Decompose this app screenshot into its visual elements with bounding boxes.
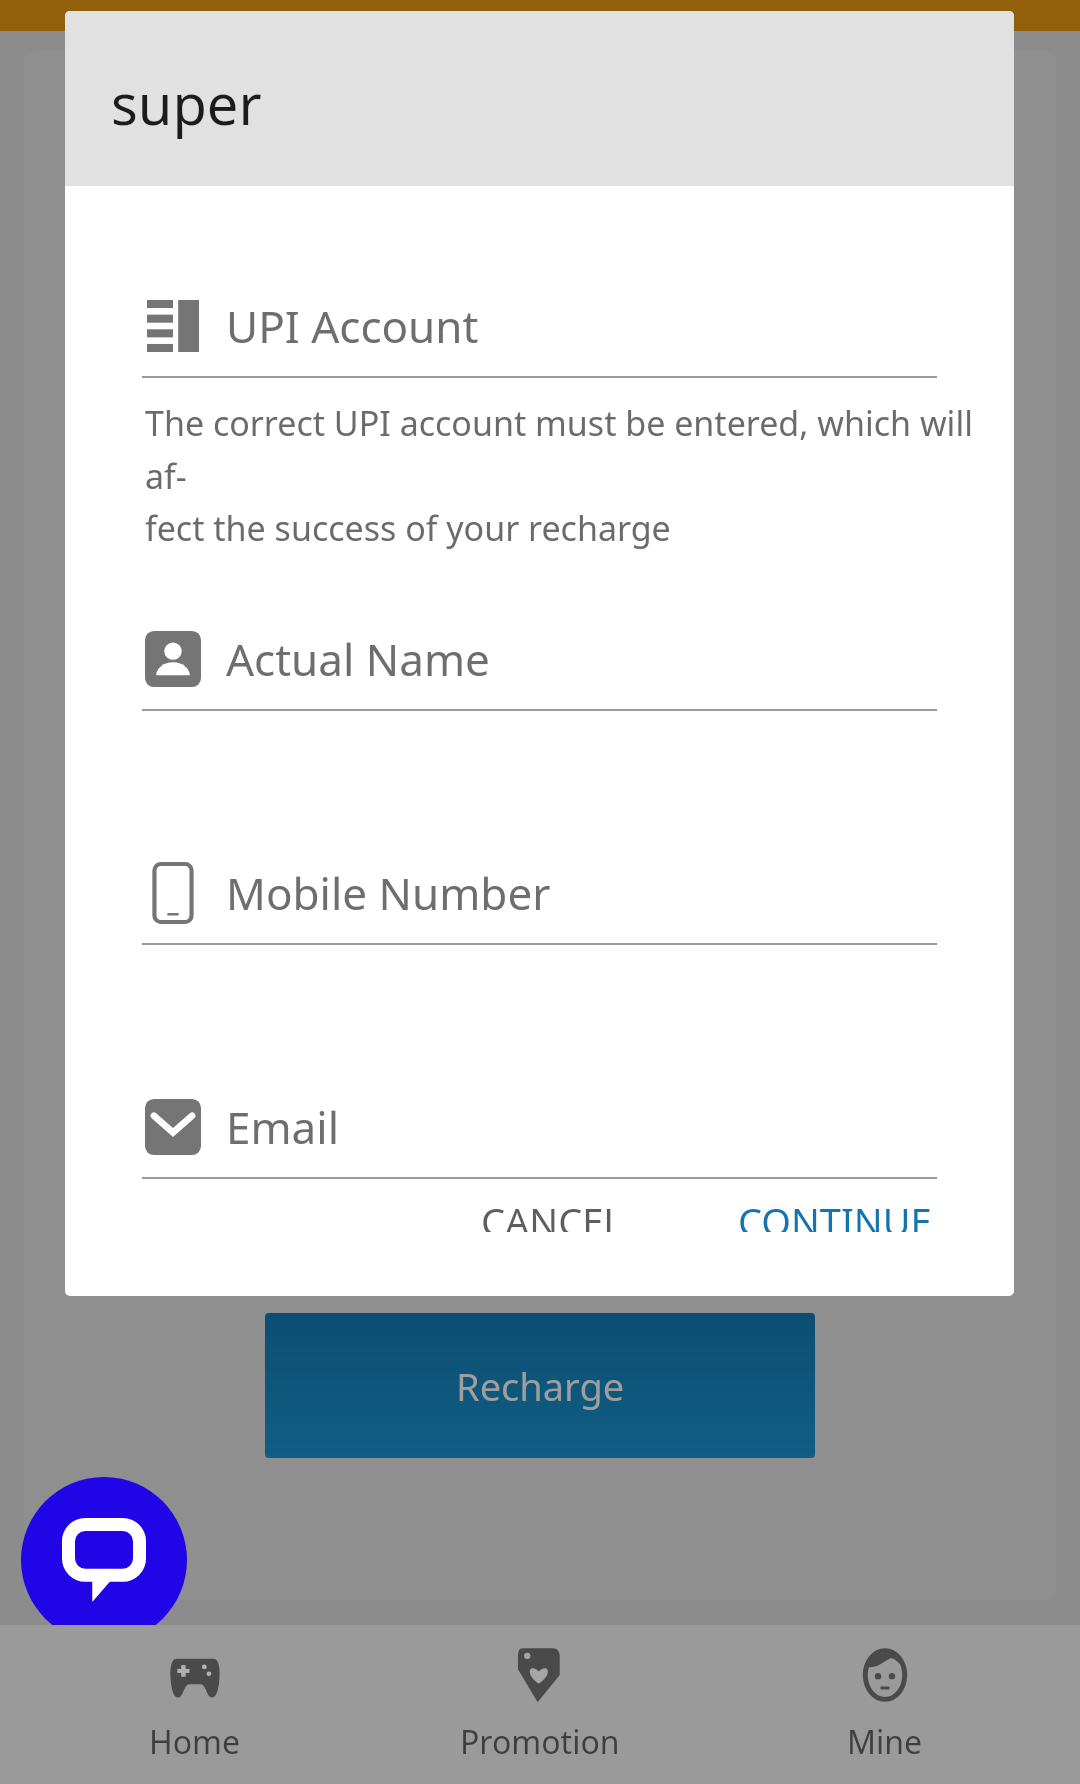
staticText: The correct UPI account must be entered,… (145, 400, 974, 551)
button[interactable]: Home (45, 1632, 345, 1778)
button[interactable]: Mobile Number (142, 863, 937, 945)
staticText: UPI Account (226, 296, 479, 356)
staticText: Home (149, 1720, 241, 1764)
button[interactable]: CANCEL (459, 1179, 646, 1248)
staticText: super (111, 65, 262, 141)
button[interactable]: Promotion (390, 1632, 690, 1778)
button[interactable]: CONTINUE (716, 1179, 954, 1248)
staticText: Email (226, 1097, 339, 1157)
button[interactable]: Actual Name (142, 629, 937, 711)
staticText: CONTINUE (738, 1195, 932, 1232)
button[interactable]: Recharge (265, 1313, 815, 1458)
staticText: Mobile Number (226, 863, 551, 923)
staticText: Promotion (460, 1720, 620, 1764)
staticText: Recharge (456, 1360, 625, 1412)
staticText: Mine (847, 1720, 923, 1764)
button[interactable]: UPI Account (142, 296, 937, 378)
staticText: CANCEL (481, 1195, 624, 1232)
button[interactable]: Mine (735, 1632, 1035, 1778)
staticText: Actual Name (226, 629, 490, 689)
button[interactable]: Chat support (21, 1477, 187, 1643)
button[interactable]: Email (142, 1097, 937, 1179)
